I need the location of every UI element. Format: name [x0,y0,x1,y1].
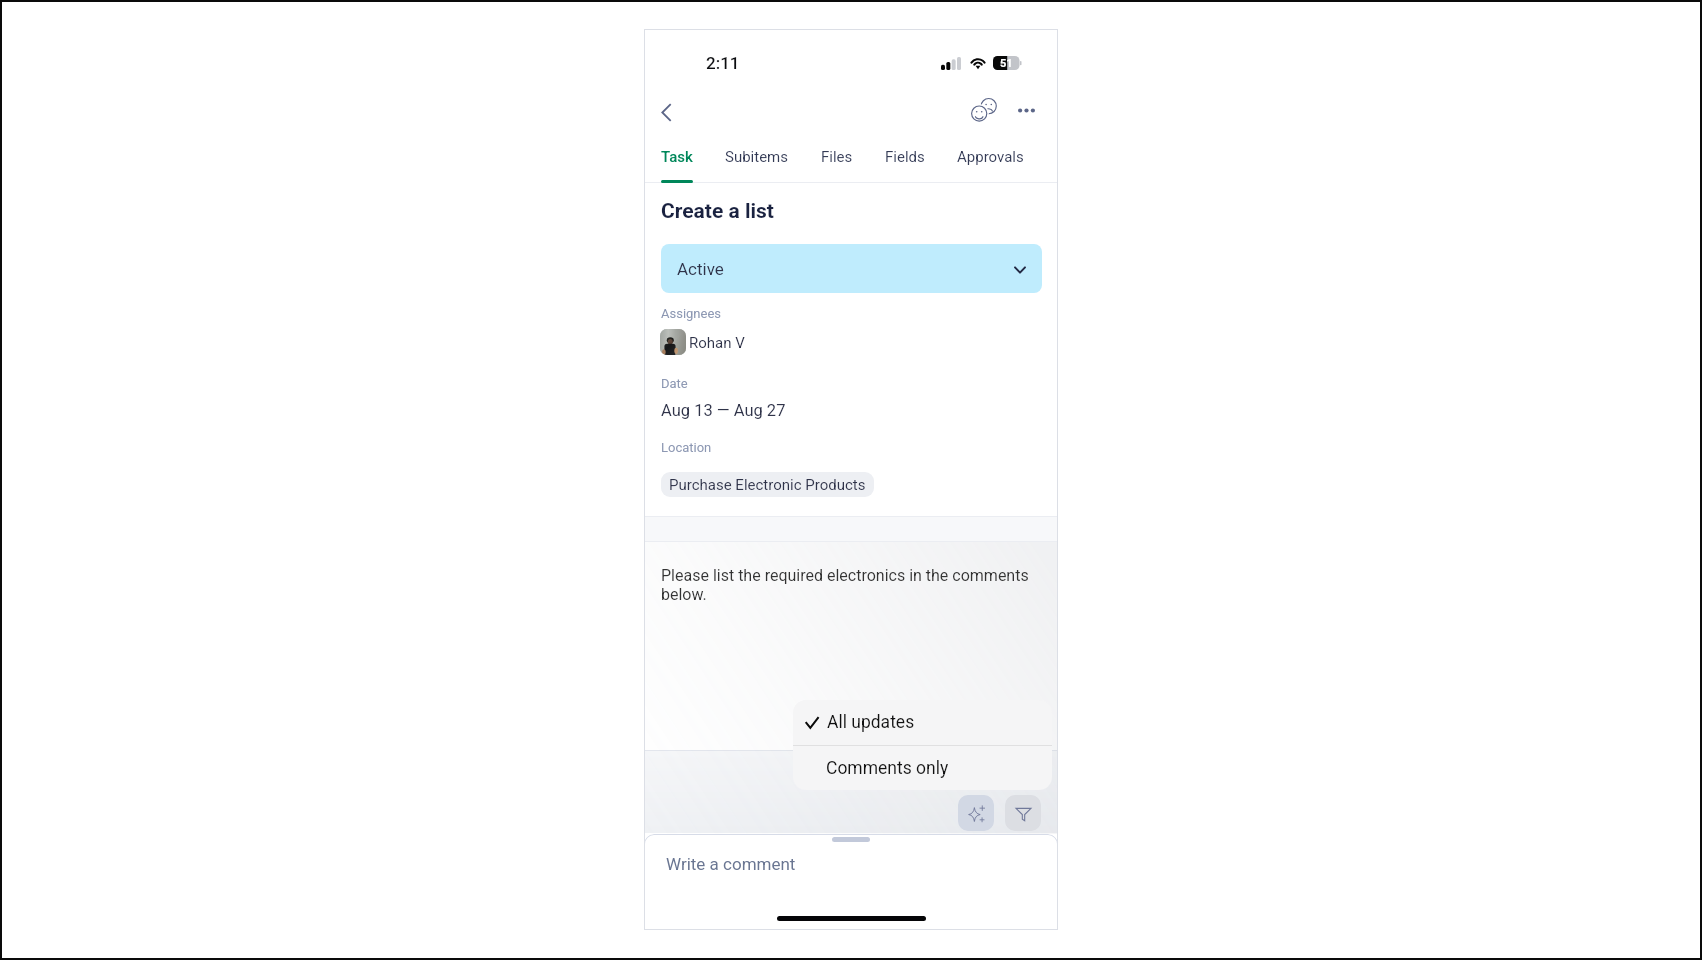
staticText: Rohan V [689,334,745,352]
button[interactable]: All updates [793,700,1052,745]
staticText: Fields [885,148,925,166]
button[interactable]: Reactions [964,92,1002,130]
staticText: All updates [827,712,915,733]
button[interactable]: Filter [1005,795,1041,831]
button[interactable]: Back [647,93,685,131]
staticText: Assignees [661,306,722,321]
staticText: Location [661,440,712,455]
button[interactable]: Write a comment [644,846,1058,892]
staticText: Please list the required electronics in … [661,566,1031,604]
staticText: Active [677,259,724,279]
staticText: Purchase Electronic Products [669,476,866,494]
button[interactable]: Fields [885,140,925,183]
staticText: Comments only [826,758,949,779]
staticText: Files [821,148,853,166]
staticText: Aug 13 — Aug 27 [661,401,786,420]
staticText: 51 [1000,57,1013,70]
staticText: Subitems [725,148,789,166]
button[interactable]: Task [661,140,693,183]
button[interactable]: Active [661,244,1042,293]
button[interactable]: Subitems [725,140,789,183]
staticText: Task [661,148,693,166]
staticText: Approvals [957,148,1024,166]
button[interactable]: AI assistant [958,795,994,831]
button[interactable]: Approvals [957,140,1024,183]
staticText: 2:11 [706,53,740,73]
button[interactable]: Comments only [793,746,1052,790]
button[interactable]: Rohan V [660,329,745,355]
staticText: Date [661,376,688,391]
button[interactable]: Files [821,140,853,183]
button[interactable]: Purchase Electronic Products [661,472,874,497]
button[interactable]: Aug 13 — Aug 27 [661,398,786,423]
button[interactable]: More options [1007,91,1045,129]
staticText: Create a list [661,199,774,224]
staticText: Write a comment [666,854,796,874]
